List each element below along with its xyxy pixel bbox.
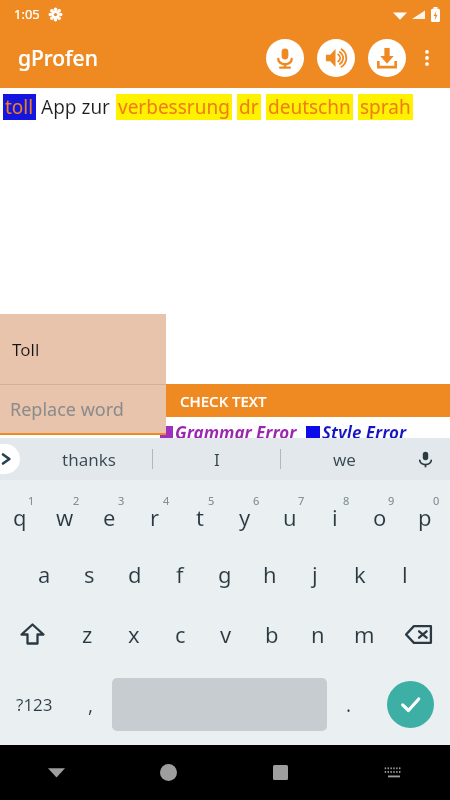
staticText: k	[354, 559, 366, 589]
button[interactable]: ?123	[0, 664, 69, 745]
button[interactable]: Download	[368, 39, 406, 77]
button[interactable]: Shift	[0, 604, 64, 664]
staticText: o	[373, 502, 387, 532]
staticText: j	[312, 559, 318, 589]
staticText: 9	[388, 493, 395, 508]
staticText: toll	[5, 94, 34, 120]
staticText: p	[418, 502, 432, 532]
button[interactable]: b	[249, 604, 295, 664]
staticText: s	[84, 559, 95, 589]
button[interactable]: s	[67, 544, 112, 604]
button[interactable]: a	[22, 544, 67, 604]
staticText: ?123	[16, 693, 53, 716]
staticText: i	[332, 502, 338, 532]
button[interactable]: x	[111, 604, 157, 664]
button[interactable]: Recent apps	[224, 745, 337, 800]
staticText: f	[176, 559, 184, 589]
button[interactable]: Speak text	[266, 39, 304, 77]
staticText: 3	[118, 493, 125, 508]
button[interactable]: i	[315, 480, 360, 544]
button[interactable]: r	[135, 480, 180, 544]
button[interactable]: Expand suggestions	[0, 444, 20, 474]
button[interactable]: k	[337, 544, 382, 604]
staticText: verbessrung	[118, 94, 230, 120]
button[interactable]: Voice input	[410, 444, 440, 474]
button[interactable]: Toll	[0, 314, 166, 384]
staticText: gProfen	[18, 44, 98, 73]
button[interactable]: y	[225, 480, 270, 544]
staticText: 7	[298, 493, 305, 508]
button[interactable]: Home	[112, 745, 224, 800]
staticText: Toll	[12, 338, 40, 361]
staticText: 1	[28, 493, 35, 508]
button[interactable]: o	[360, 480, 405, 544]
button[interactable]: Backspace	[387, 604, 450, 664]
staticText: t	[196, 502, 204, 532]
button[interactable]: Listen	[317, 39, 355, 77]
staticText: App zur	[41, 94, 110, 120]
staticText: 6	[253, 493, 260, 508]
button[interactable]: e	[90, 480, 135, 544]
button[interactable]: c	[157, 604, 203, 664]
staticText: 0	[433, 493, 440, 508]
staticText: m	[354, 619, 375, 649]
staticText: h	[263, 559, 277, 589]
button[interactable]: h	[247, 544, 292, 604]
staticText: l	[402, 559, 408, 589]
button[interactable]: n	[295, 604, 341, 664]
button[interactable]: p	[405, 480, 450, 544]
button[interactable]: Enter	[370, 664, 450, 745]
button[interactable]: l	[382, 544, 427, 604]
staticText: Replace word	[10, 397, 124, 422]
button[interactable]: Replace word	[0, 385, 166, 433]
staticText: r	[150, 502, 160, 532]
button[interactable]: j	[292, 544, 337, 604]
staticText: y	[239, 502, 251, 532]
button[interactable]: ,	[69, 664, 112, 745]
staticText: 1:05	[14, 5, 40, 23]
button[interactable]: u	[270, 480, 315, 544]
button[interactable]: thanks	[26, 438, 152, 480]
staticText: sprah	[360, 94, 411, 120]
button[interactable]: .	[327, 664, 370, 745]
staticText: I	[214, 448, 220, 471]
staticText: e	[103, 502, 116, 532]
button[interactable]: Switch keyboard	[337, 745, 450, 800]
staticText: z	[82, 619, 93, 649]
staticText: 5	[208, 493, 215, 508]
button[interactable]: q	[0, 480, 45, 544]
staticText: Style Error	[322, 421, 407, 444]
button[interactable]: v	[203, 604, 249, 664]
staticText: d	[128, 559, 142, 589]
staticText: a	[38, 559, 51, 589]
staticText: b	[265, 619, 279, 649]
staticText: 2	[73, 493, 80, 508]
button[interactable]: z	[64, 604, 111, 664]
staticText: Grammar Error	[175, 421, 297, 444]
staticText: g	[218, 559, 232, 589]
staticText: 4	[163, 493, 170, 508]
button[interactable]: we	[281, 438, 408, 480]
button[interactable]: CHECK TEXT	[166, 384, 450, 417]
staticText: n	[311, 619, 325, 649]
staticText: CHECK TEXT	[180, 391, 267, 411]
staticText: .	[346, 692, 352, 718]
staticText: ,	[88, 692, 94, 718]
button[interactable]: I	[153, 438, 280, 480]
button[interactable]: w	[45, 480, 90, 544]
button[interactable]: Hide keyboard	[0, 745, 112, 800]
button[interactable]: m	[341, 604, 387, 664]
button[interactable]: g	[202, 544, 247, 604]
button[interactable]: f	[157, 544, 202, 604]
staticText: u	[283, 502, 297, 532]
button[interactable]: More options	[406, 37, 448, 79]
button[interactable]: d	[112, 544, 157, 604]
staticText: w	[56, 502, 74, 532]
staticText: dr	[239, 94, 259, 120]
staticText: we	[333, 448, 356, 471]
staticText: x	[128, 619, 140, 649]
staticText: q	[13, 502, 27, 532]
button[interactable]: t	[180, 480, 225, 544]
staticText: thanks	[62, 448, 116, 471]
